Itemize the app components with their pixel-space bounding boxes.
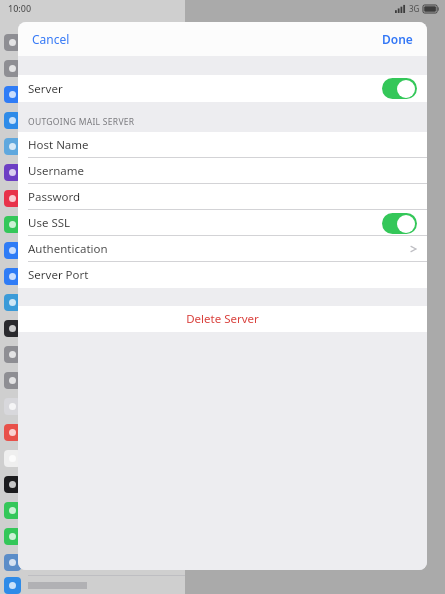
button[interactable]: Username [18,158,427,184]
staticText: Authentication [28,241,108,257]
button[interactable]: Authentication [18,236,427,262]
staticText: Username [28,163,84,179]
button[interactable]: Toggle on [382,78,417,99]
button[interactable]: Server Port [18,262,427,288]
staticText: Cancel [32,31,70,47]
staticText: Server Port [28,267,89,283]
button[interactable]: Done [368,25,427,53]
staticText: Use SSL [28,215,71,231]
button[interactable]: Toggle on [382,213,417,234]
staticText: 10:00 [8,2,32,14]
staticText: Password [28,189,81,205]
button[interactable]: Delete Server [18,306,427,332]
staticText: OUTGOING MAIL SERVER [28,116,135,128]
button[interactable]: Cancel [18,25,84,53]
button[interactable]: Use SSL [18,210,427,236]
staticText: Delete Server [186,311,259,327]
staticText: 3G [409,3,420,14]
button[interactable]: Password [18,184,427,210]
button[interactable]: Host Name [18,132,427,158]
staticText: Done [382,31,413,47]
staticText: Server [28,81,63,97]
staticText: Host Name [28,137,89,153]
button[interactable]: Server [18,75,427,102]
